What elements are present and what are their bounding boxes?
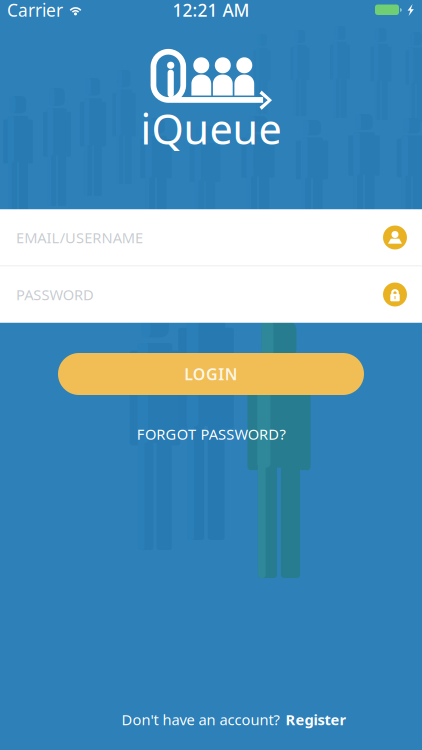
staticText: 12:21 AM (172, 0, 249, 21)
button[interactable]: FORGOT PASSWORD? (125, 420, 297, 448)
button[interactable]: Register (285, 710, 346, 729)
staticText: LOGIN (184, 363, 238, 385)
staticText: FORGOT PASSWORD? (137, 424, 285, 444)
staticText: iQueue (140, 101, 281, 156)
staticText: PASSWORD (16, 285, 94, 304)
staticText: Carrier (7, 0, 63, 21)
button[interactable]: PASSWORD (0, 266, 422, 322)
staticText: EMAIL/USERNAME (16, 228, 143, 247)
button[interactable]: EMAIL/USERNAME (0, 209, 422, 265)
staticText: Don't have an account? (121, 710, 279, 729)
staticText: Register (285, 710, 346, 729)
button[interactable]: LOGIN (58, 353, 364, 395)
